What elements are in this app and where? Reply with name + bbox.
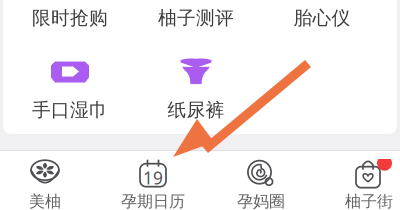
button[interactable]: 柚子街 — [315, 159, 400, 210]
button[interactable]: 孕妈圈 — [207, 159, 315, 210]
staticText: 纸尿裤 — [167, 98, 224, 121]
button[interactable]: 美柚 — [0, 159, 99, 210]
button[interactable]: 手口湿巾 — [7, 54, 133, 121]
button[interactable]: 限时抢购 — [7, 6, 133, 29]
button[interactable]: 胎心仪 — [259, 6, 385, 29]
staticText: 孕妈圈 — [237, 192, 285, 210]
staticText: 限时抢购 — [32, 6, 108, 29]
staticText: 柚子测评 — [158, 6, 234, 29]
button[interactable]: 19 — [99, 159, 207, 210]
staticText: 手口湿巾 — [32, 98, 108, 121]
staticText: 美柚 — [29, 192, 61, 210]
button[interactable]: 纸尿裤 — [133, 54, 259, 121]
staticText: 19 — [143, 166, 163, 189]
staticText: 胎心仪 — [293, 6, 350, 29]
button[interactable]: 柚子测评 — [133, 6, 259, 29]
staticText: 柚子街 — [345, 192, 393, 210]
staticText: 孕期日历 — [121, 192, 185, 210]
